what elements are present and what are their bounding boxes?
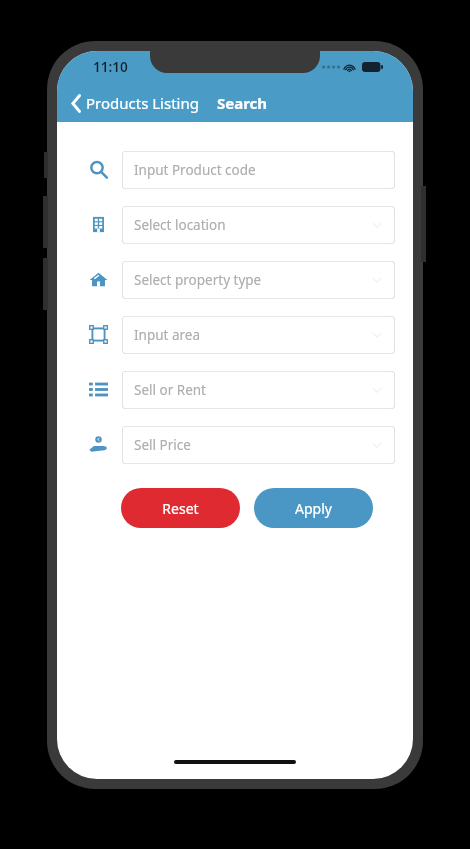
- button[interactable]: Sell or Rent: [122, 371, 395, 409]
- staticText: Input Product code: [134, 161, 256, 179]
- staticText: Select property type: [134, 271, 262, 289]
- button[interactable]: Sell Price: [122, 426, 395, 464]
- button[interactable]: Property type: [75, 252, 122, 307]
- button[interactable]: Area: [75, 307, 122, 362]
- staticText: Products Listing: [86, 93, 199, 113]
- staticText: Reset: [162, 499, 199, 518]
- button[interactable]: Location: [75, 197, 122, 252]
- staticText: Select location: [134, 216, 226, 234]
- staticText: Sell Price: [134, 436, 191, 454]
- staticText: Sell or Rent: [134, 381, 206, 399]
- button[interactable]: Input Product code: [122, 151, 395, 189]
- button[interactable]: Reset: [121, 488, 240, 528]
- button[interactable]: Sell or rent: [75, 362, 122, 417]
- button[interactable]: Input area: [122, 316, 395, 354]
- staticText: Input area: [134, 326, 201, 344]
- staticText: Search: [217, 93, 268, 113]
- button[interactable]: Apply: [254, 488, 373, 528]
- button[interactable]: Select location: [122, 206, 395, 244]
- button[interactable]: Select property type: [122, 261, 395, 299]
- staticText: Apply: [295, 499, 332, 518]
- button[interactable]: Products Listing: [70, 93, 199, 113]
- button[interactable]: Search product code: [75, 142, 122, 197]
- button[interactable]: Sell price: [75, 417, 122, 472]
- staticText: 11:10: [93, 58, 128, 76]
